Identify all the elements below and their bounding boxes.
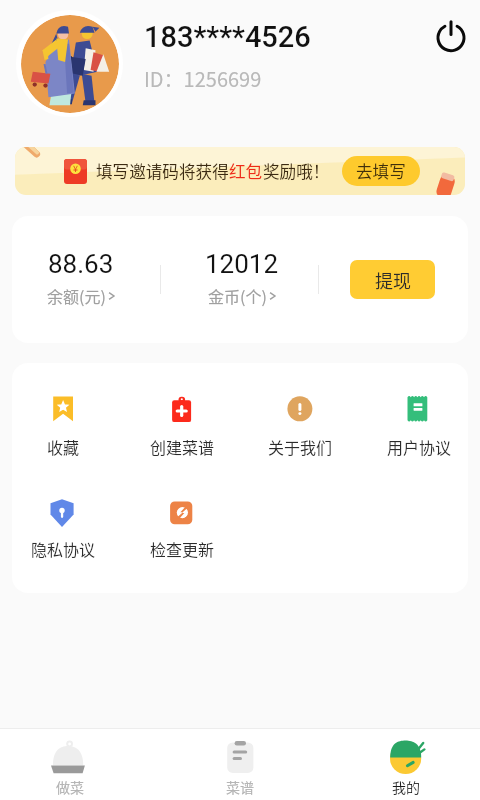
button[interactable]: 88.63: [20, 216, 142, 343]
button[interactable]: Logout: [429, 14, 473, 58]
staticText: 填写邀请码将获得: [96, 159, 229, 183]
staticText: 88.63: [48, 249, 114, 279]
staticText: 检查更新: [150, 537, 215, 560]
button[interactable]: 做菜: [15, 729, 125, 800]
button[interactable]: 用户协议: [369, 393, 468, 458]
staticText: ¥: [73, 162, 78, 175]
button[interactable]: 收藏: [13, 393, 113, 458]
staticText: 183****4526: [144, 20, 311, 54]
button[interactable]: 隐私协议: [13, 495, 113, 560]
staticText: 奖励哦！: [263, 159, 330, 183]
staticText: 余额(元): [47, 284, 106, 307]
staticText: 去填写: [356, 159, 406, 183]
staticText: 12012: [205, 249, 279, 279]
staticText: ID：1256699: [144, 64, 262, 93]
button[interactable]: 提现: [350, 260, 435, 299]
button[interactable]: 关于我们: [250, 393, 350, 458]
staticText: 隐私协议: [31, 537, 96, 560]
staticText: 提现: [375, 267, 411, 293]
staticText: 金币(个): [208, 284, 267, 307]
button[interactable]: 创建菜谱: [132, 393, 232, 458]
staticText: 用户协议: [387, 435, 452, 458]
button[interactable]: 我的: [351, 729, 461, 800]
button[interactable]: 去填写: [342, 156, 420, 186]
button[interactable]: Avatar: [16, 10, 123, 117]
staticText: 关于我们: [268, 435, 333, 458]
staticText: 创建菜谱: [150, 435, 215, 458]
staticText: 红包: [229, 159, 263, 183]
staticText: 菜谱: [226, 777, 254, 797]
button[interactable]: 菜谱: [185, 729, 295, 800]
button[interactable]: ¥: [15, 147, 465, 195]
staticText: 我的: [392, 777, 420, 797]
button[interactable]: 12012: [181, 216, 303, 343]
staticText: 做菜: [56, 777, 84, 797]
staticText: 收藏: [47, 435, 80, 458]
button[interactable]: 检查更新: [132, 495, 232, 560]
